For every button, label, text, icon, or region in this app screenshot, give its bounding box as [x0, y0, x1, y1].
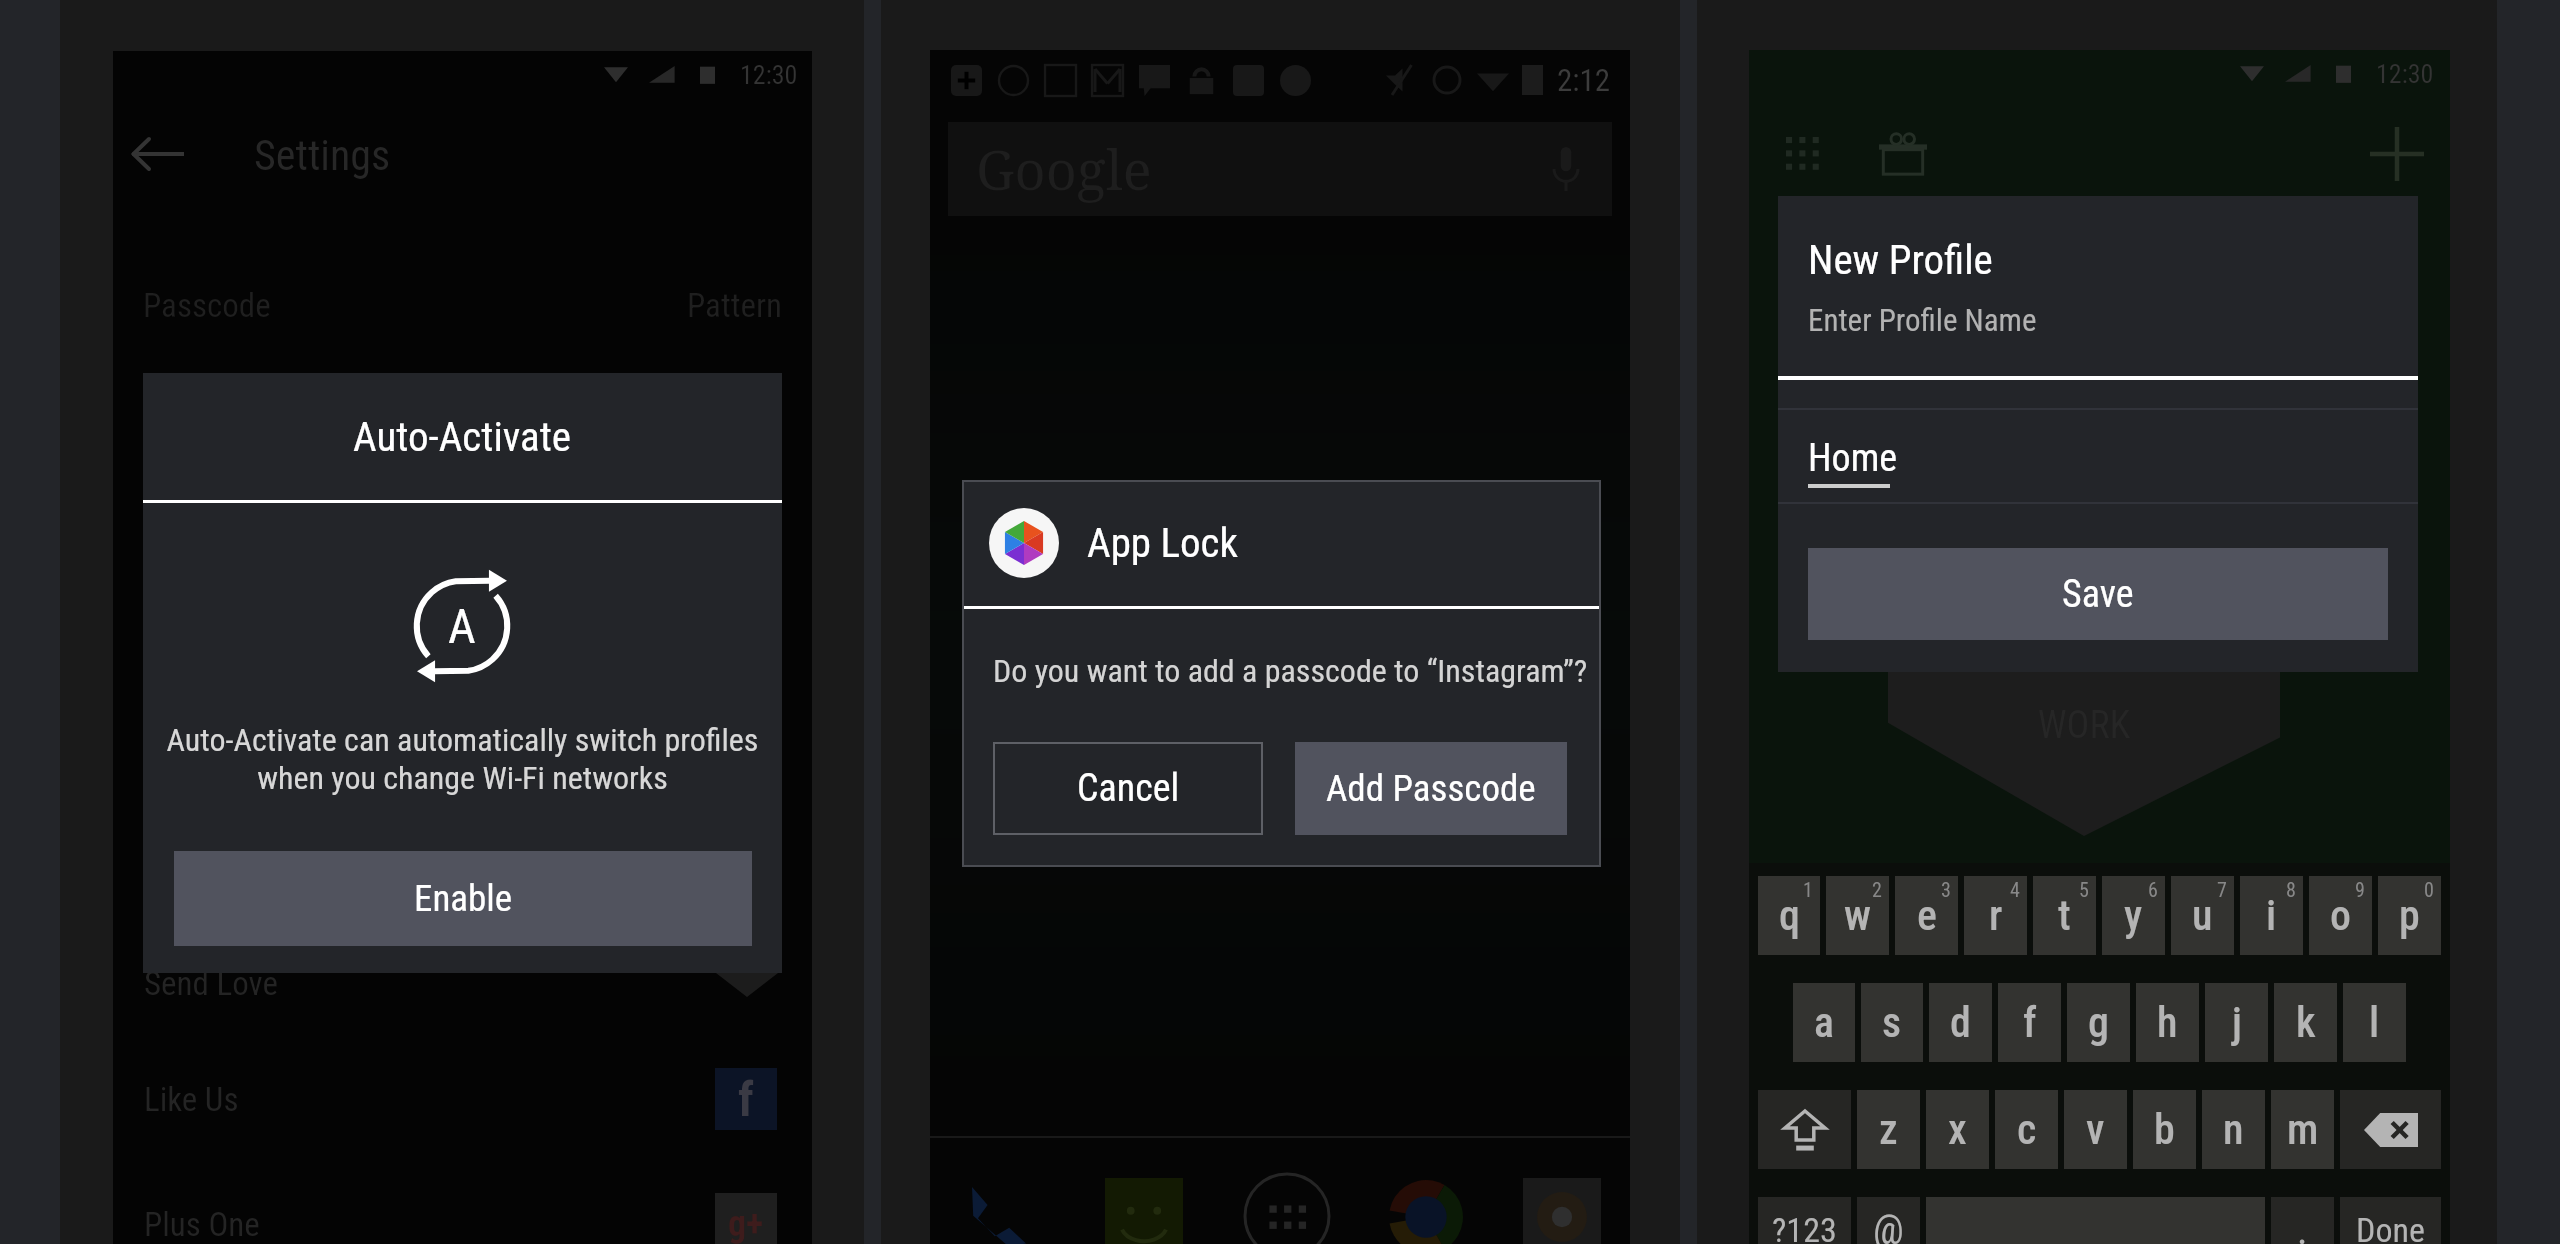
staticText: w	[1844, 891, 1871, 940]
staticText: h	[2157, 998, 2178, 1047]
button[interactable]: m	[2271, 1090, 2334, 1169]
button[interactable]: i	[2240, 876, 2303, 955]
button[interactable]: n	[2202, 1090, 2265, 1169]
staticText: t	[2058, 891, 2071, 940]
button[interactable]: t	[2033, 876, 2096, 955]
button[interactable]: @	[1857, 1197, 1920, 1244]
staticText: 12:30	[2376, 59, 2434, 89]
button[interactable]: j	[2205, 983, 2268, 1062]
staticText: r	[1989, 891, 2003, 940]
button[interactable]: Done	[2340, 1197, 2441, 1244]
staticText: when you change Wi-Fi networks	[143, 759, 782, 797]
staticText: App Lock	[1087, 519, 1238, 567]
staticText: n	[2223, 1105, 2244, 1154]
staticText: ?123	[1772, 1210, 1837, 1244]
button[interactable]: Save	[1808, 548, 2388, 640]
staticText: Cancel	[1077, 766, 1180, 811]
staticText: e	[1917, 891, 1937, 940]
staticText: d	[1950, 998, 1971, 1047]
staticText: New Profile	[1808, 236, 1993, 284]
staticText: Home	[1808, 436, 1898, 481]
staticText: Auto-Activate can automatically switch p…	[143, 721, 782, 759]
staticText: o	[2330, 891, 2351, 940]
staticText: 4	[2010, 878, 2020, 901]
staticText: m	[2287, 1105, 2319, 1154]
button[interactable]: Photos	[1520, 1175, 1604, 1244]
staticText: Enable	[414, 877, 513, 920]
button[interactable]: b	[2133, 1090, 2196, 1169]
button[interactable]: Back	[113, 109, 203, 199]
staticText: Like Us	[144, 1080, 239, 1119]
button[interactable]: Passcode	[143, 257, 782, 353]
staticText: v	[2086, 1105, 2105, 1154]
staticText: f	[738, 1071, 754, 1127]
staticText: Send Love	[144, 964, 278, 1003]
button[interactable]: k	[2274, 983, 2337, 1062]
staticText: 6	[2148, 878, 2158, 901]
staticText: Pattern	[687, 286, 782, 325]
button[interactable]: e	[1895, 876, 1958, 955]
button[interactable]: Cancel	[993, 742, 1263, 835]
button[interactable]: Add Passcode	[1295, 742, 1567, 835]
staticText: a	[1814, 998, 1834, 1047]
button[interactable]: c	[1995, 1090, 2058, 1169]
staticText: Google	[976, 132, 1152, 206]
button[interactable]: l	[2343, 983, 2406, 1062]
button[interactable]: u	[2171, 876, 2234, 955]
staticText: k	[2296, 998, 2316, 1047]
button[interactable]: o	[2309, 876, 2372, 955]
button[interactable]: Chrome	[1384, 1175, 1468, 1244]
button[interactable]: a	[1793, 983, 1855, 1062]
button[interactable]: y	[2102, 876, 2165, 955]
button[interactable]: w	[1826, 876, 1889, 955]
staticText: z	[1879, 1105, 1898, 1154]
staticText: Settings	[254, 131, 391, 180]
staticText: A	[448, 598, 476, 654]
staticText: 9	[2355, 878, 2365, 901]
button[interactable]: g	[2067, 983, 2130, 1062]
button[interactable]: Like Us	[144, 1044, 777, 1154]
staticText: i	[2266, 891, 2277, 940]
button[interactable]: Play Store	[1102, 1175, 1186, 1244]
staticText: g+	[728, 1203, 764, 1244]
staticText: q	[1779, 891, 1800, 940]
staticText: Enter Profile Name	[1808, 302, 2037, 338]
button[interactable]: Send Love	[144, 928, 777, 1038]
button[interactable]: f	[1998, 983, 2061, 1062]
button[interactable]: Backspace	[2340, 1090, 2441, 1169]
staticText: .	[2297, 1207, 2308, 1244]
button[interactable]: r	[1964, 876, 2027, 955]
staticText: Plus One	[144, 1205, 260, 1244]
staticText: 3	[1941, 878, 1951, 901]
button[interactable]: p	[2378, 876, 2441, 955]
button[interactable]: q	[1758, 876, 1820, 955]
staticText: WORK	[1888, 703, 2280, 748]
button[interactable]: s	[1861, 983, 1923, 1062]
button[interactable]: Shift	[1758, 1090, 1851, 1169]
staticText: 1	[1803, 878, 1813, 901]
button[interactable]: z	[1857, 1090, 1920, 1169]
button[interactable]: Enable	[174, 851, 752, 946]
button[interactable]: ?123	[1758, 1197, 1851, 1244]
staticText: 2:12	[1557, 62, 1611, 98]
staticText: g	[2088, 998, 2109, 1047]
button[interactable]: Plus One	[144, 1169, 777, 1244]
staticText: f	[2023, 998, 2037, 1047]
button[interactable]: All apps	[1239, 1168, 1335, 1244]
button[interactable]: .	[2271, 1197, 2334, 1244]
button[interactable]: v	[2064, 1090, 2127, 1169]
button[interactable]: Apps	[1767, 118, 1839, 190]
button[interactable]: d	[1929, 983, 1992, 1062]
button[interactable]: x	[1926, 1090, 1989, 1169]
button[interactable]: Phone	[954, 1175, 1038, 1244]
staticText: y	[2124, 891, 2143, 940]
button[interactable]: Gifts	[1863, 114, 1943, 194]
staticText: p	[2399, 891, 2420, 940]
button[interactable]: h	[2136, 983, 2199, 1062]
staticText: Add Passcode	[1326, 767, 1536, 810]
staticText: b	[2154, 1105, 2175, 1154]
staticText: l	[2369, 998, 2380, 1047]
button[interactable]: Add	[2357, 114, 2437, 194]
